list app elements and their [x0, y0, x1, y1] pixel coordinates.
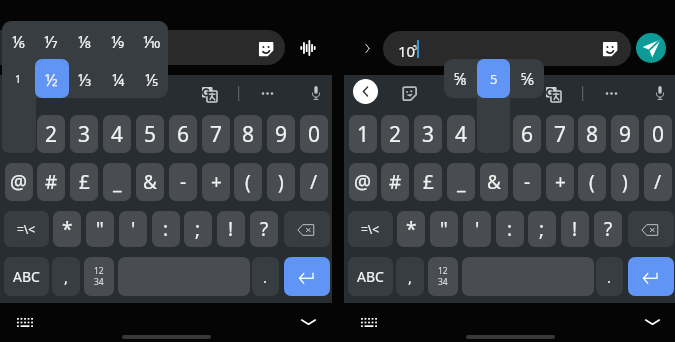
button[interactable]: 5 — [477, 59, 510, 98]
button[interactable]: Send — [636, 33, 666, 63]
button[interactable]: Hide keyboard — [644, 317, 661, 327]
button[interactable]: @ — [5, 163, 33, 201]
button[interactable]: ¼ — [101, 59, 135, 98]
button[interactable]: 9 — [267, 115, 295, 153]
button[interactable]: £ — [414, 163, 442, 201]
button[interactable]: " — [86, 211, 114, 247]
button[interactable]: 3 — [414, 115, 442, 153]
button[interactable]: . — [596, 257, 623, 296]
button[interactable]: ⅛ — [68, 21, 102, 60]
button[interactable]: Enter — [628, 257, 674, 296]
button[interactable]: ! — [217, 211, 245, 247]
button[interactable]: 2 — [37, 115, 65, 153]
button[interactable]: ⅒ — [135, 21, 168, 60]
button[interactable]: 9 — [611, 115, 639, 153]
button[interactable]: # — [381, 163, 409, 201]
button[interactable]: =\< — [348, 211, 393, 247]
button[interactable]: 0 — [300, 115, 328, 153]
button[interactable]: 8 — [578, 115, 606, 153]
button[interactable]: ⅝ — [444, 59, 477, 98]
button[interactable]: ⅙ — [2, 21, 35, 60]
button[interactable]: Voice input — [310, 85, 322, 101]
button[interactable]: 3 — [70, 115, 98, 153]
button[interactable]: " — [430, 211, 458, 247]
button[interactable]: ) — [267, 163, 295, 201]
button[interactable]: , — [396, 257, 424, 296]
button[interactable]: ( — [578, 163, 606, 201]
button[interactable]: Switch keyboard — [361, 318, 377, 327]
button[interactable]: 4 — [447, 115, 475, 153]
button[interactable]: / — [300, 163, 328, 201]
button[interactable]: ⅓ — [68, 59, 102, 98]
button[interactable]: 1 — [2, 59, 35, 98]
button[interactable]: ? — [594, 211, 622, 247]
button[interactable]: , — [52, 257, 80, 296]
button[interactable]: # — [37, 163, 65, 201]
button[interactable]: Sticker — [602, 41, 618, 57]
button[interactable] — [383, 31, 631, 66]
button[interactable]: Voice message — [300, 40, 316, 56]
button[interactable]: Stickers — [402, 86, 417, 101]
button[interactable]: ' — [119, 211, 147, 247]
button[interactable]: Switch keyboard — [17, 318, 33, 327]
button[interactable]: @ — [349, 163, 377, 201]
button[interactable]: + — [202, 163, 230, 201]
button[interactable]: ⅕ — [135, 59, 168, 98]
button[interactable]: ⅑ — [101, 21, 135, 60]
button[interactable]: Sticker — [258, 41, 274, 57]
button[interactable]: / — [644, 163, 672, 201]
button[interactable]: ⅚ — [511, 59, 544, 98]
button[interactable]: Numbers — [428, 257, 458, 296]
button[interactable]: 2 — [381, 115, 409, 153]
button[interactable]: : — [496, 211, 524, 247]
button[interactable]: ' — [463, 211, 491, 247]
button[interactable]: ABC — [348, 257, 393, 296]
button[interactable]: ? — [250, 211, 278, 247]
button[interactable]: & — [136, 163, 164, 201]
button[interactable]: Backspace — [284, 211, 330, 247]
button[interactable]: £ — [70, 163, 98, 201]
button[interactable]: ½ — [34, 59, 68, 98]
button[interactable]: Back — [353, 79, 378, 104]
button[interactable]: =\< — [4, 211, 49, 247]
button[interactable]: 6 — [169, 115, 197, 153]
button[interactable]: 6 — [513, 115, 541, 153]
button[interactable]: ! — [561, 211, 589, 247]
button[interactable]: & — [480, 163, 508, 201]
button[interactable]: ( — [234, 163, 262, 201]
button[interactable]: : — [152, 211, 180, 247]
button[interactable]: Translate — [202, 87, 217, 102]
button[interactable]: Numbers — [84, 257, 114, 296]
button[interactable]: More options — [604, 86, 619, 101]
button[interactable]: Voice input — [654, 85, 666, 101]
button[interactable]: - — [513, 163, 541, 201]
button[interactable]: + — [546, 163, 574, 201]
button[interactable]: More options — [260, 86, 275, 101]
button[interactable]: 0 — [644, 115, 672, 153]
button[interactable]: . — [252, 257, 279, 296]
button[interactable]: - — [169, 163, 197, 201]
button[interactable]: Translate — [546, 87, 561, 102]
button[interactable]: 1 — [349, 115, 377, 153]
button[interactable]: 8 — [234, 115, 262, 153]
button[interactable]: Hide keyboard — [300, 317, 317, 327]
button[interactable]: ) — [611, 163, 639, 201]
button[interactable]: ⅐ — [34, 21, 68, 60]
button[interactable] — [0, 30, 285, 65]
button[interactable]: 5 — [136, 115, 164, 153]
button[interactable]: ; — [528, 211, 556, 247]
button[interactable]: Expand — [363, 42, 372, 55]
button[interactable]: * — [397, 211, 425, 247]
button[interactable]: Enter — [284, 257, 330, 296]
button[interactable]: _ — [103, 163, 131, 201]
button[interactable]: * — [53, 211, 81, 247]
button[interactable]: ABC — [4, 257, 49, 296]
button[interactable]: 7 — [202, 115, 230, 153]
button[interactable]: 7 — [546, 115, 574, 153]
button[interactable]: 4 — [103, 115, 131, 153]
button[interactable]: _ — [447, 163, 475, 201]
button[interactable]: Backspace — [628, 211, 674, 247]
button[interactable]: ; — [184, 211, 212, 247]
